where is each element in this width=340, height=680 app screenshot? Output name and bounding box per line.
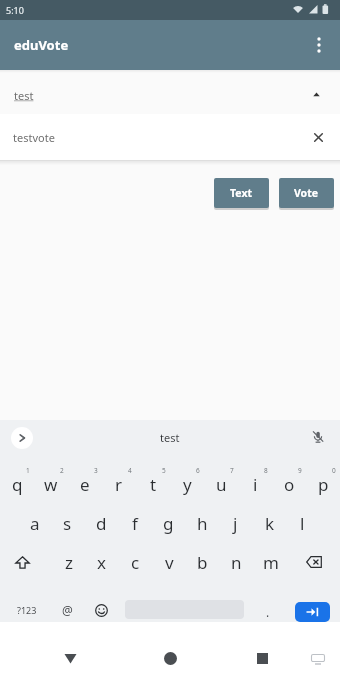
button[interactable]: g xyxy=(152,503,185,543)
button[interactable] xyxy=(56,644,84,672)
staticText: 0 xyxy=(332,466,336,475)
button[interactable]: Vote xyxy=(279,178,334,208)
staticText: v xyxy=(165,551,174,574)
button[interactable]: p xyxy=(306,463,340,505)
staticText: 9 xyxy=(298,466,302,475)
button[interactable]: l xyxy=(286,503,319,543)
staticText: k xyxy=(265,512,275,535)
button[interactable]: x xyxy=(85,542,118,582)
button[interactable] xyxy=(11,427,33,449)
staticText: . xyxy=(266,604,270,620)
button[interactable]: y xyxy=(170,463,204,505)
button[interactable]: test xyxy=(140,422,200,452)
staticText: q xyxy=(12,473,23,496)
button[interactable]: b xyxy=(186,542,219,582)
staticText: h xyxy=(197,512,208,535)
button[interactable] xyxy=(156,644,184,672)
button[interactable]: test xyxy=(0,70,340,114)
button[interactable]: w xyxy=(34,463,68,505)
button[interactable]: r xyxy=(102,463,136,505)
staticText: 1 xyxy=(26,466,30,475)
button[interactable] xyxy=(248,644,276,672)
button[interactable]: f xyxy=(118,503,151,543)
staticText: d xyxy=(96,512,107,535)
button[interactable]: j xyxy=(219,503,252,543)
button[interactable]: a xyxy=(18,503,51,543)
staticText: 3 xyxy=(94,466,98,475)
staticText: Vote xyxy=(294,186,319,200)
button[interactable] xyxy=(306,647,330,671)
staticText: t xyxy=(150,473,157,496)
button[interactable]: k xyxy=(253,503,286,543)
staticText: w xyxy=(44,473,58,496)
staticText: z xyxy=(65,551,73,574)
staticText: e xyxy=(80,473,90,496)
staticText: 4 xyxy=(128,466,132,475)
staticText: b xyxy=(197,551,208,574)
button[interactable]: h xyxy=(186,503,219,543)
button[interactable]: z xyxy=(52,542,85,582)
button[interactable]: @ xyxy=(53,594,81,626)
staticText: 5 xyxy=(162,466,166,475)
button[interactable]: s xyxy=(51,503,84,543)
staticText: i xyxy=(253,473,258,496)
staticText: Text xyxy=(230,186,253,200)
staticText: n xyxy=(231,551,242,574)
staticText: o xyxy=(284,473,295,496)
button[interactable]: v xyxy=(153,542,186,582)
staticText: testvote xyxy=(13,130,55,145)
staticText: 5:10 xyxy=(6,4,24,16)
staticText: l xyxy=(300,512,305,535)
button[interactable]: m xyxy=(254,542,287,582)
staticText: test xyxy=(160,430,180,445)
button[interactable]: u xyxy=(204,463,238,505)
button[interactable]: q xyxy=(0,463,34,505)
staticText: j xyxy=(233,512,238,535)
staticText: 2 xyxy=(60,466,64,475)
staticText: test xyxy=(14,88,34,103)
staticText: 7 xyxy=(230,466,234,475)
button[interactable] xyxy=(292,542,336,582)
staticText: c xyxy=(131,551,140,574)
staticText: p xyxy=(318,473,329,496)
button[interactable]: testvote xyxy=(0,114,340,161)
staticText: y xyxy=(183,473,192,496)
button[interactable] xyxy=(304,423,332,451)
staticText: m xyxy=(263,551,279,574)
button[interactable] xyxy=(87,594,115,626)
staticText: g xyxy=(163,512,174,535)
button[interactable]: e xyxy=(68,463,102,505)
button[interactable]: d xyxy=(85,503,118,543)
staticText: a xyxy=(30,512,40,535)
button[interactable]: o xyxy=(272,463,306,505)
button[interactable] xyxy=(1,542,43,582)
staticText: s xyxy=(63,512,72,535)
staticText: f xyxy=(132,512,138,535)
staticText: ?123 xyxy=(17,604,37,616)
button[interactable]: i xyxy=(238,463,272,505)
staticText: 6 xyxy=(196,466,200,475)
button[interactable]: ?123 xyxy=(8,594,46,626)
button[interactable]: n xyxy=(220,542,253,582)
staticText: 8 xyxy=(264,466,268,475)
staticText: u xyxy=(216,473,227,496)
button[interactable] xyxy=(307,33,331,57)
button[interactable]: Text xyxy=(214,178,269,208)
button[interactable]: c xyxy=(119,542,152,582)
staticText: r xyxy=(115,473,123,496)
button[interactable]: t xyxy=(136,463,170,505)
button[interactable] xyxy=(295,602,330,622)
staticText: x xyxy=(97,551,106,574)
staticText: @ xyxy=(62,602,73,618)
button[interactable]: . xyxy=(256,598,280,626)
staticText: eduVote xyxy=(14,36,69,54)
